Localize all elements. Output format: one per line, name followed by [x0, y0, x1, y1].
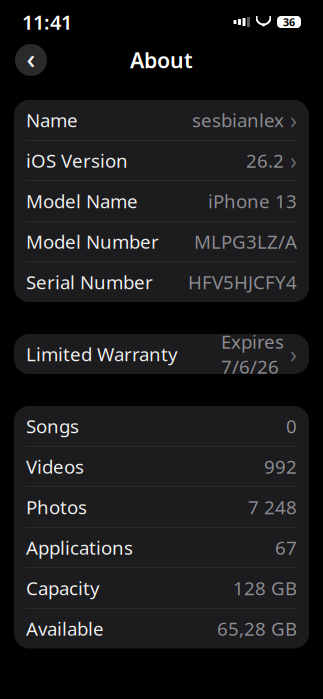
- button[interactable]: Back: [14, 43, 48, 77]
- staticText: Capacity: [26, 576, 100, 600]
- staticText: ›: [290, 339, 297, 369]
- button[interactable]: Photos: [14, 487, 309, 527]
- staticText: 67: [275, 535, 297, 560]
- staticText: Applications: [26, 535, 133, 560]
- button[interactable]: Songs: [14, 406, 309, 446]
- button[interactable]: Videos: [14, 446, 309, 486]
- button[interactable]: Limited Warranty: [14, 334, 309, 374]
- staticText: 26.2: [246, 148, 284, 173]
- staticText: Model Name: [26, 189, 138, 213]
- button[interactable]: Serial Number: [14, 262, 309, 302]
- staticText: HFV5HJCFY4: [188, 270, 297, 294]
- staticText: 65,28 GB: [217, 616, 297, 641]
- button[interactable]: Available: [14, 608, 309, 648]
- staticText: Available: [26, 616, 104, 641]
- staticText: 11:41: [22, 9, 72, 35]
- button[interactable]: iOS Version: [14, 140, 309, 180]
- button[interactable]: Name: [14, 100, 309, 140]
- staticText: 36: [283, 15, 295, 29]
- staticText: 128 GB: [233, 576, 297, 600]
- staticText: Limited Warranty: [26, 342, 178, 366]
- staticText: ›: [290, 145, 297, 175]
- staticText: About: [130, 46, 193, 74]
- staticText: iPhone 13: [208, 189, 297, 213]
- button[interactable]: Capacity: [14, 568, 309, 608]
- staticText: MLPG3LZ/A: [194, 229, 297, 254]
- staticText: Model Number: [26, 229, 159, 254]
- staticText: 7 248: [248, 495, 297, 519]
- staticText: Name: [26, 108, 78, 132]
- staticText: Serial Number: [26, 270, 153, 294]
- staticText: ›: [290, 105, 297, 135]
- staticText: Songs: [26, 414, 79, 438]
- staticText: Expires 7/6/26: [221, 329, 284, 379]
- button[interactable]: Model Number: [14, 221, 309, 261]
- staticText: sesbianlex: [192, 108, 284, 132]
- button[interactable]: Model Name: [14, 181, 309, 221]
- button[interactable]: Applications: [14, 527, 309, 567]
- staticText: iOS Version: [26, 148, 128, 173]
- staticText: ‹: [26, 41, 35, 76]
- staticText: Photos: [26, 495, 87, 519]
- staticText: 992: [264, 454, 297, 479]
- staticText: 0: [286, 414, 297, 438]
- staticText: Videos: [26, 454, 84, 479]
